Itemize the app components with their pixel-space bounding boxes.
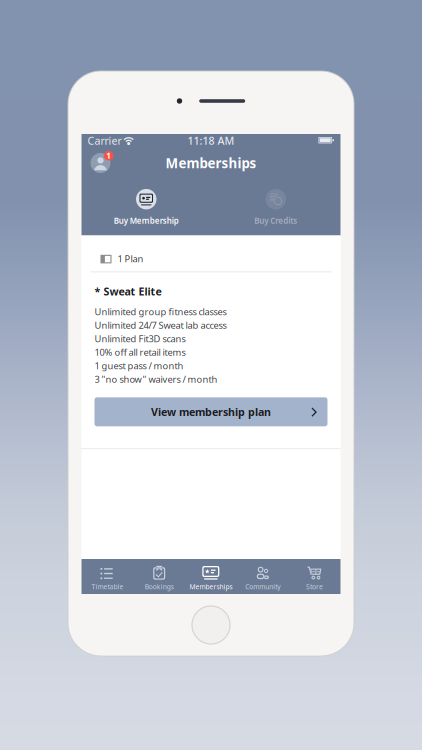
button[interactable]: Profile (88, 152, 112, 174)
staticText: View membership plan (151, 405, 271, 419)
staticText: 1 Plan (117, 252, 143, 265)
staticText: Bookings (145, 582, 174, 591)
button[interactable]: Buy Credits (211, 188, 340, 226)
button[interactable]: Store (289, 559, 340, 594)
button[interactable]: View membership plan (94, 397, 327, 426)
button[interactable]: Buy Membership (81, 188, 211, 226)
staticText: 11:18 AM (187, 133, 234, 148)
staticText: Store (306, 582, 323, 591)
staticText: 1 (106, 150, 111, 161)
staticText: Unlimited 24/7 Sweat lab access (94, 319, 226, 331)
staticText: 1 guest pass / month (94, 359, 183, 372)
button[interactable]: Community (237, 559, 289, 594)
staticText: 3 "no show" waivers / month (94, 373, 217, 385)
staticText: Memberships (165, 154, 256, 172)
button[interactable]: Memberships (185, 559, 237, 594)
staticText: Carrier (87, 133, 121, 148)
staticText: Buy Credits (254, 215, 297, 226)
button[interactable]: Timetable (81, 559, 133, 594)
staticText: Memberships (189, 582, 232, 591)
staticText: 10% off all retail items (94, 346, 185, 358)
staticText: Unlimited Fit3D scans (94, 332, 185, 345)
staticText: Timetable (91, 582, 123, 591)
staticText: Community (245, 582, 280, 591)
button[interactable]: Bookings (133, 559, 185, 594)
button[interactable]: 1 Plan (81, 235, 340, 271)
staticText: Buy Membership (114, 215, 179, 226)
staticText: * Sweat Elite (94, 284, 161, 298)
staticText: Unlimited group fitness classes (94, 305, 226, 318)
